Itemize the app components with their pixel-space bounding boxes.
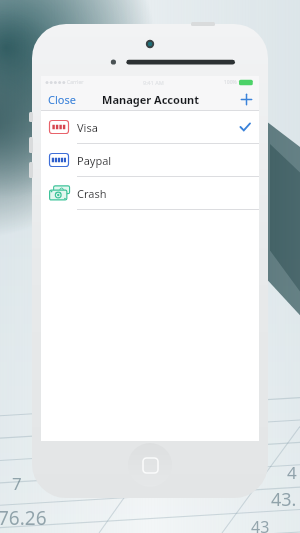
staticText: Paypal	[77, 153, 239, 168]
button[interactable]: Visa	[41, 111, 259, 143]
button[interactable]: Home	[128, 443, 172, 487]
staticText: 43	[251, 516, 270, 533]
staticText: 7	[12, 472, 22, 495]
button[interactable]: Add account	[238, 91, 254, 107]
button[interactable]: Crash	[41, 177, 259, 209]
staticText: Carrier	[67, 79, 84, 86]
staticText: Close	[48, 92, 76, 107]
staticText: 43.	[271, 487, 297, 512]
staticText: Visa	[77, 120, 239, 135]
staticText: Manager Account	[102, 92, 199, 107]
staticText: Crash	[77, 186, 239, 201]
staticText: 76.26	[0, 505, 47, 531]
staticText: 9:41 AM	[143, 79, 164, 86]
staticText: 100%	[224, 79, 237, 86]
staticText: 4	[287, 461, 297, 484]
button[interactable]: Close	[45, 89, 79, 110]
button[interactable]: Paypal	[41, 144, 259, 176]
